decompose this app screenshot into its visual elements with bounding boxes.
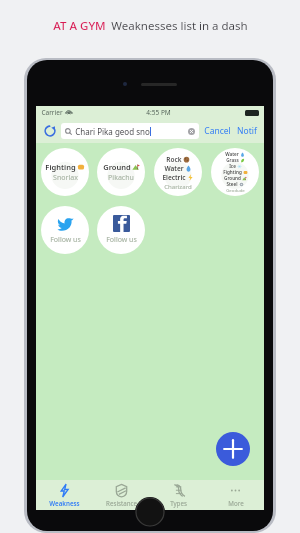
- staticText: Snorlax: [53, 172, 78, 182]
- staticText: Carrier: [41, 108, 63, 117]
- staticText: Grass: [226, 157, 239, 163]
- button[interactable]: Chari Pika geod sno: [61, 123, 199, 139]
- staticText: Follow us: [50, 235, 81, 245]
- staticText: Rock: [166, 155, 182, 164]
- staticText: Geodude: [226, 187, 245, 193]
- button[interactable]: Refresh: [42, 123, 58, 139]
- staticText: AT A GYM: [53, 18, 106, 34]
- staticText: Steel: [226, 181, 238, 187]
- staticText: Water: [225, 151, 239, 157]
- staticText: Resistance: [106, 499, 137, 507]
- staticText: Follow us: [106, 235, 137, 245]
- staticText: Water: [164, 164, 184, 173]
- staticText: Fighting: [45, 162, 76, 172]
- button[interactable]: More: [207, 480, 264, 510]
- staticText: Pikachu: [108, 172, 134, 182]
- staticText: Types: [170, 499, 187, 507]
- button[interactable]: Ground: [97, 148, 145, 196]
- staticText: Ice: [229, 163, 236, 169]
- button[interactable]: Follow us on Twitter: [41, 206, 89, 254]
- staticText: Ground: [103, 162, 131, 172]
- button[interactable]: Notif: [236, 125, 258, 137]
- staticText: Fighting: [223, 169, 242, 175]
- button[interactable]: Weakness: [36, 480, 93, 510]
- button[interactable]: Cancel: [203, 125, 232, 137]
- staticText: Chari Pika geod sno: [75, 126, 150, 137]
- button[interactable]: Water: [211, 148, 259, 196]
- button[interactable]: Resistance: [93, 480, 150, 510]
- staticText: Notif: [237, 125, 257, 137]
- staticText: 4:55 PM: [146, 108, 171, 117]
- staticText: Cancel: [204, 125, 231, 137]
- staticText: Ground: [224, 175, 241, 181]
- button[interactable]: Rock: [154, 148, 202, 196]
- staticText: Charizard: [164, 182, 192, 190]
- staticText: Weaknesses list in a dash: [111, 18, 248, 34]
- button[interactable]: Fighting: [41, 148, 89, 196]
- staticText: More: [228, 499, 244, 507]
- button[interactable]: Follow us on Facebook: [97, 206, 145, 254]
- staticText: Weakness: [49, 499, 80, 507]
- button[interactable]: Types: [150, 480, 207, 510]
- button[interactable]: Add: [216, 432, 250, 466]
- staticText: Electric: [162, 173, 186, 182]
